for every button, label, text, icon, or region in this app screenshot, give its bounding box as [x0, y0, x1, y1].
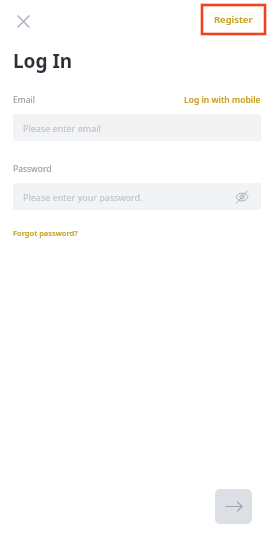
button[interactable]: Continue — [215, 489, 252, 524]
button[interactable]: Close — [13, 11, 33, 31]
button[interactable]: Register — [202, 5, 265, 34]
staticText: Please enter email — [23, 122, 101, 134]
button[interactable]: Show password — [233, 188, 251, 206]
staticText: Forgot password? — [13, 228, 78, 238]
staticText: Log In — [13, 48, 73, 74]
staticText: Please enter your password. — [23, 191, 143, 203]
button[interactable]: Log in with mobile — [184, 94, 261, 106]
button[interactable]: Please enter email — [13, 114, 261, 141]
staticText: Register — [214, 13, 253, 26]
staticText: Password — [13, 163, 52, 175]
staticText: Log in with mobile — [184, 94, 261, 106]
button[interactable]: Forgot password? — [13, 228, 78, 238]
staticText: Email — [13, 94, 35, 106]
button[interactable]: Please enter your password. — [13, 183, 261, 210]
